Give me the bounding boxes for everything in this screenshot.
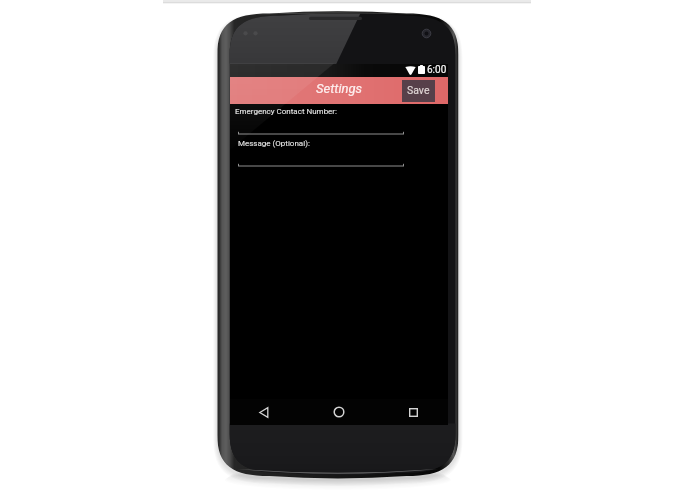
staticText: Message (Optional): (238, 139, 310, 148)
staticText: Save (407, 84, 430, 96)
button[interactable]: Recent apps (395, 399, 431, 425)
button[interactable]: Back (246, 399, 282, 425)
button[interactable]: Save (402, 80, 435, 102)
staticText: Settings (316, 81, 363, 96)
button[interactable]: Text field (238, 162, 404, 167)
button[interactable]: Text field (238, 130, 404, 135)
staticText: 6:00 (427, 64, 447, 76)
staticText: Emergency Contact Number: (235, 107, 338, 116)
button[interactable]: Home (321, 399, 357, 425)
